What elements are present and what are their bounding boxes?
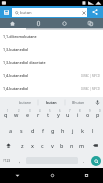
button[interactable]: 7: [63, 108, 73, 123]
button[interactable]: s: [16, 123, 27, 138]
staticText: butan: [20, 10, 32, 16]
staticText: l: [92, 127, 94, 134]
button[interactable]: c: [37, 138, 47, 153]
button[interactable]: n: [67, 138, 77, 153]
button[interactable]: x: [27, 138, 37, 153]
button[interactable]: 9: [83, 108, 93, 123]
staticText: 5: [49, 109, 51, 113]
button[interactable]: j: [68, 123, 78, 138]
staticText: v: [51, 142, 54, 149]
staticText: a: [9, 127, 13, 134]
staticText: h: [61, 127, 65, 134]
staticText: j: [72, 127, 74, 134]
button[interactable]: Home: [0, 18, 25, 28]
button[interactable]: Share: [87, 6, 103, 18]
staticText: 9: [89, 109, 91, 113]
staticText: IUPAC | MFCD: [81, 74, 100, 78]
button[interactable]: z: [17, 138, 27, 153]
staticText: w: [14, 111, 19, 118]
button[interactable]: Search: [89, 153, 103, 168]
button[interactable]: Voice input: [92, 97, 103, 108]
button[interactable]: l: [88, 123, 98, 138]
staticText: 8: [79, 109, 81, 113]
staticText: butan: [46, 100, 57, 105]
button[interactable]: butan: [38, 97, 65, 108]
button[interactable]: 1,4-butanediol: [0, 82, 103, 95]
button[interactable]: 5: [43, 108, 53, 123]
button[interactable]: b: [57, 138, 67, 153]
button[interactable]: Back: [0, 168, 35, 183]
staticText: z: [21, 142, 24, 149]
button[interactable]: a: [5, 123, 16, 138]
staticText: 1,1-dibromobutane: [3, 34, 37, 39]
staticText: 1,4-butanediol: [3, 86, 29, 91]
staticText: p: [96, 111, 100, 118]
button[interactable]: 1: [0, 108, 11, 123]
button[interactable]: Backspace: [87, 138, 103, 153]
staticText: 1,4-butanediol: [3, 73, 29, 78]
staticText: 2: [18, 109, 20, 113]
staticText: b: [60, 142, 64, 149]
button[interactable]: v: [47, 138, 57, 153]
staticText: u: [66, 111, 70, 118]
button[interactable]: Clear search: [80, 8, 87, 17]
button[interactable]: 1,3-butanediol: [0, 43, 103, 56]
staticText: k: [81, 127, 85, 134]
staticText: 1,3-butanediol diacetate: [3, 60, 46, 65]
button[interactable]: Bhutan: [65, 97, 92, 108]
button[interactable]: Shift: [0, 138, 17, 153]
button[interactable]: ?123: [0, 153, 13, 168]
staticText: d: [31, 127, 35, 134]
staticText: q: [4, 111, 8, 118]
button[interactable]: .: [78, 153, 89, 168]
staticText: 0: [99, 109, 101, 113]
button[interactable]: d: [27, 123, 38, 138]
button[interactable]: 8: [73, 108, 83, 123]
staticText: 7: [69, 109, 71, 113]
staticText: Bhutan: [72, 100, 85, 105]
button[interactable]: h: [58, 123, 68, 138]
button[interactable]: 4: [33, 108, 43, 123]
staticText: y: [57, 111, 60, 118]
button[interactable]: 2: [11, 108, 22, 123]
button[interactable]: f: [38, 123, 48, 138]
button[interactable]: m: [77, 138, 87, 153]
button[interactable]: Documents: [77, 18, 103, 28]
button[interactable]: Structure search: [51, 18, 77, 28]
staticText: 6: [59, 109, 61, 113]
button[interactable]: 3: [22, 108, 33, 123]
button[interactable]: butane: [11, 97, 38, 108]
staticText: 3: [29, 109, 31, 113]
staticText: 1,3-butanediol: [3, 47, 29, 52]
button[interactable]: 1,1-dibromobutane: [0, 30, 103, 43]
button[interactable]: 1,3-butanediol diacetate: [0, 56, 103, 69]
staticText: f: [42, 127, 44, 134]
staticText: i: [77, 111, 79, 118]
staticText: 1: [7, 109, 9, 113]
staticText: n: [70, 142, 74, 149]
staticText: m: [79, 142, 85, 149]
staticText: 4: [39, 109, 41, 113]
staticText: g: [51, 127, 55, 134]
staticText: .: [83, 158, 85, 164]
staticText: r: [37, 111, 40, 118]
button[interactable]: 1,4-butanediol: [0, 69, 103, 82]
button[interactable]: Recent apps: [69, 168, 103, 183]
staticText: ,: [19, 158, 21, 164]
button[interactable]: 6: [53, 108, 63, 123]
staticText: ?123: [3, 158, 11, 163]
staticText: IUPAC | MFCD: [81, 87, 100, 91]
button[interactable]: g: [48, 123, 58, 138]
button[interactable]: ,: [13, 153, 26, 168]
staticText: o: [86, 111, 90, 118]
button[interactable]: Compounds: [25, 18, 51, 28]
button[interactable]: Navigate up: [0, 6, 12, 18]
button[interactable]: k: [78, 123, 88, 138]
staticText: c: [41, 142, 44, 149]
staticText: butane: [19, 100, 31, 105]
button[interactable]: Home: [35, 168, 69, 183]
staticText: t: [47, 111, 50, 118]
button[interactable]: 0: [93, 108, 103, 123]
staticText: x: [31, 142, 34, 149]
